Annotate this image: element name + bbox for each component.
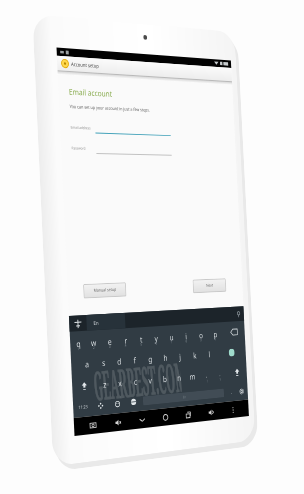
- button[interactable]: Input method: [72, 316, 83, 330]
- staticText: f: [133, 354, 136, 365]
- button[interactable]: Space: [143, 388, 224, 405]
- button[interactable]: Account setup: [57, 56, 232, 81]
- button[interactable]: En: [86, 313, 125, 331]
- button[interactable]: p: [208, 322, 223, 344]
- button[interactable]: s: [95, 351, 112, 374]
- staticText: 9: [200, 337, 202, 342]
- staticText: o: [199, 329, 203, 340]
- button[interactable]: e: [101, 329, 118, 351]
- staticText: a: [85, 358, 90, 369]
- button[interactable]: t: [133, 327, 149, 349]
- staticText: r: [124, 334, 128, 346]
- staticText: q: [76, 337, 81, 349]
- button[interactable]: Emoji: [109, 393, 126, 414]
- button[interactable]: f: [127, 348, 143, 371]
- button[interactable]: Voice input: [234, 308, 242, 319]
- button[interactable]: a: [78, 352, 96, 375]
- button[interactable]: Volume down: [111, 414, 124, 431]
- button[interactable]: m: [185, 365, 200, 387]
- staticText: 8: [185, 338, 188, 343]
- staticText: c: [134, 375, 137, 387]
- button[interactable]: o: [193, 323, 209, 345]
- button[interactable]: h: [157, 346, 173, 368]
- button[interactable]: Hide keyboard: [135, 411, 148, 428]
- button[interactable]: i: [178, 324, 194, 346]
- staticText: v: [148, 374, 153, 386]
- staticText: .: [219, 370, 221, 377]
- staticText: 0: [214, 336, 217, 341]
- button[interactable]: c: [128, 370, 143, 393]
- button[interactable]: z: [96, 372, 113, 396]
- staticText: !: [207, 378, 208, 383]
- staticText: s: [102, 356, 106, 368]
- staticText: j: [179, 351, 182, 362]
- button[interactable]: r: [117, 328, 134, 350]
- staticText: You can set up your account in just a fe…: [69, 103, 151, 113]
- button[interactable]: More options: [227, 402, 239, 417]
- staticText: 1: [77, 346, 80, 351]
- button[interactable]: y: [148, 326, 164, 348]
- staticText: i: [185, 330, 188, 341]
- button[interactable]: Home: [159, 409, 171, 425]
- staticText: h: [163, 352, 168, 363]
- button[interactable]: Email address: [60, 121, 235, 138]
- button[interactable]: Enter: [216, 341, 246, 363]
- button[interactable]: Symbols: [92, 395, 110, 416]
- staticText: ?: [219, 377, 221, 382]
- staticText: u: [169, 331, 174, 342]
- button[interactable]: Backspace: [222, 321, 245, 342]
- staticText: g: [148, 353, 153, 364]
- staticText: Next: [206, 283, 213, 289]
- button[interactable]: Change language: [125, 392, 141, 412]
- staticText: l: [208, 348, 211, 359]
- staticText: Password: [71, 145, 86, 151]
- button[interactable]: ,: [199, 364, 214, 386]
- button[interactable]: w: [85, 330, 102, 353]
- staticText: b: [163, 373, 167, 384]
- button[interactable]: k: [187, 344, 203, 366]
- staticText: e: [108, 335, 112, 347]
- staticText: p: [213, 328, 218, 339]
- button[interactable]: .: [226, 382, 236, 402]
- staticText: m: [189, 370, 196, 382]
- staticText: En: [93, 318, 99, 326]
- staticText: .: [230, 389, 232, 396]
- staticText: z: [103, 378, 107, 390]
- button[interactable]: Password: [61, 142, 236, 157]
- staticText: w: [91, 336, 97, 348]
- staticText: 5: [140, 341, 143, 347]
- button[interactable]: Keyboard settings: [235, 381, 248, 401]
- staticText: Email account: [69, 86, 113, 100]
- staticText: n: [177, 372, 181, 383]
- button[interactable]: b: [157, 367, 172, 390]
- staticText: GEARBEST.COM: [91, 349, 183, 412]
- button[interactable]: Next: [192, 278, 226, 293]
- staticText: 3: [109, 344, 112, 349]
- button[interactable]: l: [202, 343, 217, 365]
- button[interactable]: u: [163, 325, 179, 347]
- button[interactable]: n: [171, 366, 186, 388]
- staticText: x: [118, 377, 123, 388]
- staticText: Manual setup: [93, 287, 116, 294]
- button[interactable]: g: [142, 347, 158, 370]
- staticText: 2: [93, 345, 95, 350]
- button[interactable]: Recent apps: [182, 406, 194, 423]
- staticText: 6: [155, 340, 158, 345]
- staticText: k: [193, 349, 197, 361]
- button[interactable]: d: [111, 350, 128, 372]
- button[interactable]: Manual setup: [83, 282, 126, 299]
- button[interactable]: x: [112, 371, 129, 394]
- staticText: En: [183, 394, 187, 399]
- button[interactable]: Shift: [226, 361, 247, 383]
- button[interactable]: Volume up: [205, 404, 217, 420]
- button[interactable]: j: [172, 345, 188, 367]
- staticText: y: [154, 332, 159, 343]
- button[interactable]: Screenshot: [86, 416, 99, 433]
- staticText: Account setup: [71, 61, 99, 70]
- button[interactable]: Shift: [72, 374, 97, 398]
- staticText: 11:23: [78, 404, 88, 411]
- button[interactable]: q: [70, 331, 86, 354]
- button[interactable]: v: [142, 369, 158, 391]
- button[interactable]: 11:23: [73, 396, 93, 418]
